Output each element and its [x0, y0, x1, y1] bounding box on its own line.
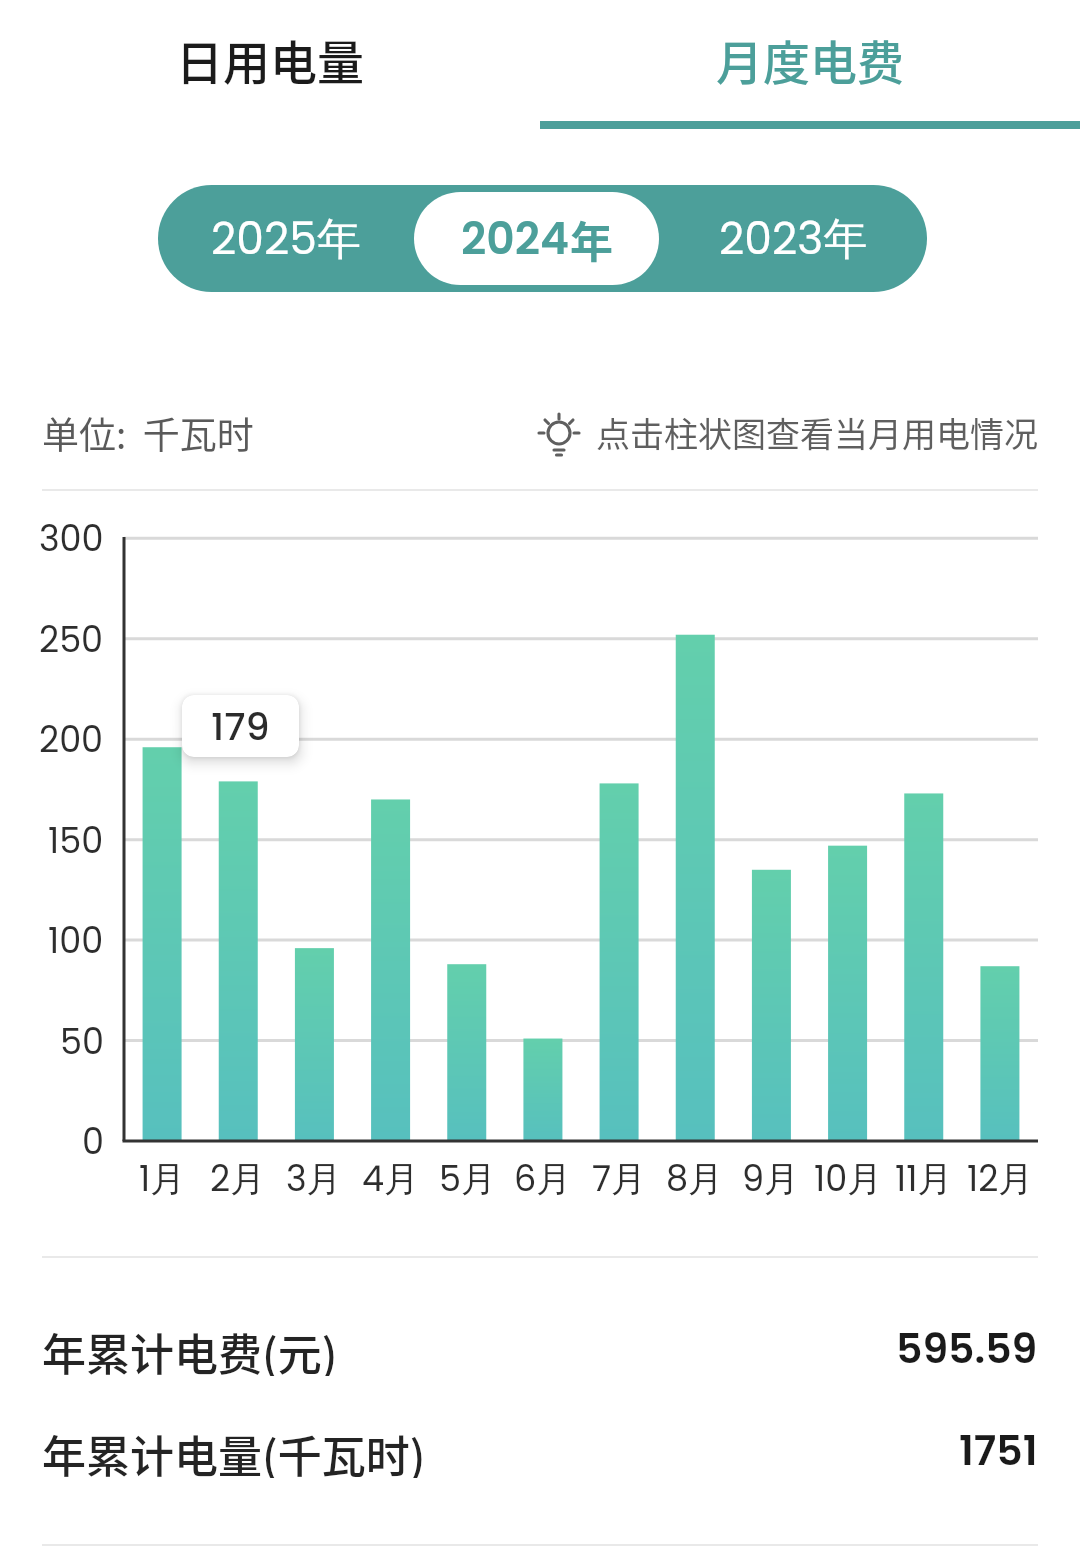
staticText: 10月 [814, 1154, 883, 1203]
staticText: 2月 [210, 1154, 266, 1203]
button[interactable]: 月度电费 [540, 0, 1080, 118]
button[interactable]: 3月 [269, 1152, 359, 1204]
staticText: 日用电量 [176, 25, 364, 93]
staticText: 2023年 [719, 208, 868, 270]
staticText: 4月 [362, 1154, 420, 1203]
staticText: 8月 [666, 1154, 724, 1203]
staticText: 点击柱状图查看当月用电情况 [596, 408, 1038, 457]
button[interactable]: 8月 [650, 1152, 740, 1204]
staticText: 0 [82, 1117, 104, 1166]
staticText: 单位: 千瓦时 [42, 406, 254, 460]
staticText: 300 [39, 514, 104, 563]
button[interactable]: 12月 [955, 1152, 1045, 1204]
staticText: 月度电费 [716, 25, 904, 93]
staticText: 595.59 [896, 1320, 1038, 1376]
staticText: 年累计电费(元) [42, 1320, 338, 1376]
button[interactable]: 10月 [803, 1152, 893, 1204]
button[interactable]: 日用电量 [0, 0, 540, 118]
button[interactable]: 2023年 [659, 185, 927, 292]
staticText: 50 [60, 1017, 104, 1066]
button[interactable]: 5月 [422, 1152, 512, 1204]
button[interactable]: 1月 [117, 1152, 207, 1204]
staticText: 1751 [959, 1422, 1038, 1478]
staticText: 5月 [439, 1154, 496, 1203]
button[interactable]: 9月 [726, 1152, 816, 1204]
staticText: 12月 [967, 1154, 1034, 1203]
button[interactable]: 4月 [346, 1152, 436, 1204]
button[interactable]: 2024 [414, 185, 659, 292]
staticText: 250 [39, 615, 104, 664]
staticText: 9月 [742, 1154, 800, 1203]
staticText: 2025年 [211, 208, 361, 270]
staticText: 年 [570, 208, 613, 270]
staticText: 200 [39, 715, 104, 764]
staticText: 1月 [139, 1154, 186, 1203]
staticText: 100 [48, 916, 104, 965]
staticText: 2024 [461, 208, 570, 270]
staticText: 年累计电量(千瓦时) [42, 1422, 426, 1478]
staticText: 3月 [286, 1154, 342, 1203]
staticText: 150 [48, 816, 104, 865]
button[interactable]: 6月 [498, 1152, 588, 1204]
staticText: 11月 [895, 1154, 953, 1203]
staticText: 7月 [592, 1154, 647, 1203]
button[interactable]: 2025年 [158, 185, 414, 292]
staticText: 179 [211, 700, 270, 753]
button[interactable]: 7月 [574, 1152, 664, 1204]
button[interactable]: 11月 [879, 1152, 969, 1204]
staticText: 6月 [514, 1154, 572, 1203]
button[interactable]: 2月 [193, 1152, 283, 1204]
